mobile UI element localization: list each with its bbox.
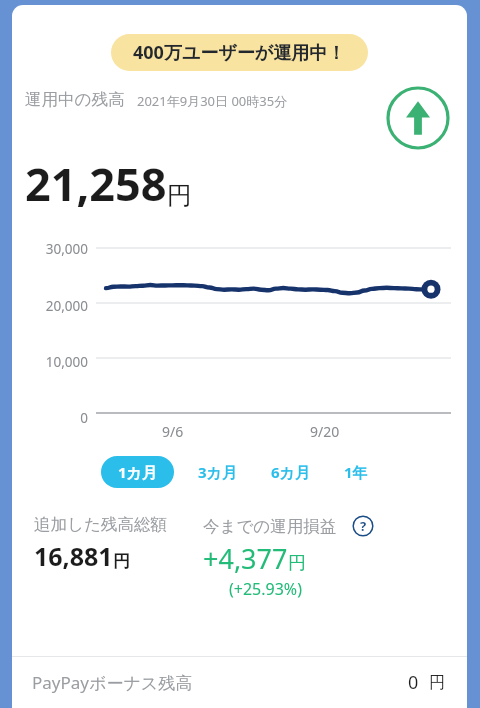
staticText: 0 [12, 409, 88, 427]
staticText: 円 [113, 551, 130, 572]
button[interactable]: 運用額を追加する [385, 85, 451, 151]
button[interactable]: 1年 [334, 456, 378, 488]
staticText: 400万ユーザーが運用中！ [133, 40, 346, 65]
staticText: (+25.93%) [229, 578, 302, 600]
staticText: 21,258 [25, 153, 167, 214]
staticText: ? [360, 517, 367, 535]
staticText: 20,000 [12, 297, 88, 315]
staticText: 円 [429, 673, 445, 693]
staticText: 運用中の残高 [25, 89, 125, 110]
staticText: 9/20 [310, 422, 340, 441]
staticText: PayPayボーナス残高 [32, 671, 193, 694]
button[interactable]: 6カ月 [261, 456, 320, 488]
button[interactable]: 400万ユーザーが運用中！ [111, 34, 368, 71]
button[interactable]: ヘルプ [351, 514, 375, 538]
staticText: 円 [167, 180, 192, 211]
staticText: +4,377 [203, 540, 288, 577]
staticText: 1年 [344, 462, 368, 482]
staticText: 3カ月 [198, 462, 237, 482]
staticText: 6カ月 [271, 462, 310, 482]
staticText: 追加した残高総額 [34, 514, 167, 535]
button[interactable]: 3カ月 [188, 456, 247, 488]
staticText: 2021年9月30日 00時35分 [137, 92, 288, 110]
staticText: 0 [408, 670, 419, 695]
staticText: 今までの運用損益 [203, 516, 337, 537]
staticText: 10,000 [12, 353, 88, 371]
staticText: 9/6 [162, 422, 184, 441]
staticText: 16,881 [34, 539, 113, 573]
staticText: 円 [288, 552, 306, 575]
staticText: 30,000 [12, 240, 88, 258]
button[interactable]: 1カ月 [101, 456, 174, 488]
button[interactable]: PayPayボーナス残高 [12, 657, 467, 708]
staticText: 1カ月 [118, 462, 157, 482]
